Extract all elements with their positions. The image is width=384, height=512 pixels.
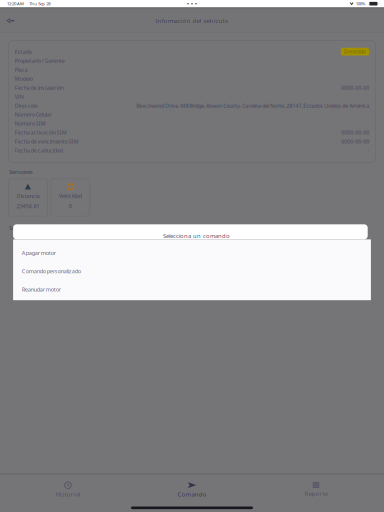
staticText: Propietario / Gerente [15, 57, 65, 64]
button[interactable]: Apagar motor [13, 238, 371, 257]
staticText: Apagar motor [22, 249, 56, 257]
button[interactable]: Reanudar motor [13, 275, 371, 293]
staticText: 23458.81 [16, 202, 39, 210]
staticText: Reanudar motor [22, 286, 61, 293]
staticText: Reporte [304, 489, 327, 498]
staticText: - [367, 147, 369, 154]
staticText: 0000-00-00 [341, 138, 369, 145]
staticText: 100% [356, 1, 366, 7]
staticText: Modelo [15, 75, 33, 82]
staticText: Velocidad [59, 192, 82, 199]
staticText: Fecha activación SIM [15, 129, 67, 136]
staticText: Fecha de instalación [15, 84, 64, 91]
staticText: VIN [15, 93, 24, 100]
staticText: 0000-00-00 [341, 84, 369, 91]
staticText: Detenido [344, 48, 366, 55]
button[interactable]: Comando personalizado [13, 257, 371, 275]
staticText: Thu Sep 28 [29, 1, 50, 7]
staticText: Fecha de caducidad [15, 147, 63, 154]
staticText: Historial [55, 490, 80, 498]
staticText: 0000-00-00 [341, 129, 369, 136]
staticText: Número Celular [15, 111, 52, 118]
staticText: Dirección [15, 102, 38, 109]
staticText: Distancia [16, 192, 39, 199]
staticText: 0 [69, 202, 72, 210]
staticText: Número SIM [15, 120, 46, 127]
staticText: Seguridad [9, 224, 37, 232]
staticText: Información del vehículo [155, 17, 228, 25]
staticText: Fecha de vencimiento SIM [15, 138, 79, 145]
staticText: Estado [15, 48, 32, 55]
staticText: Beechwood Drive, Mill Bridge, Rowan Coun… [136, 102, 369, 109]
staticText: Selecciona un comando [163, 232, 230, 240]
staticText: Comando [177, 490, 206, 498]
button[interactable]: Back [0, 9, 21, 32]
staticText: Sensores [9, 168, 33, 176]
staticText: Comando personalizado [22, 267, 81, 275]
button[interactable]: Reporte [254, 476, 378, 506]
button[interactable]: Comando [130, 476, 254, 506]
staticText: Placa [15, 66, 28, 73]
staticText: 12:20 AM [7, 1, 24, 7]
